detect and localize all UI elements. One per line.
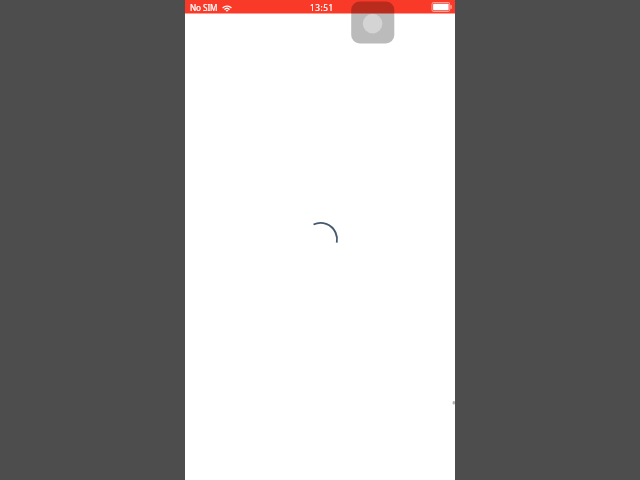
button[interactable]: Assistive touch [346,0,396,46]
staticText: 13:51 [310,2,334,13]
staticText: No SIM [190,2,218,13]
other: Loading [303,222,338,257]
button[interactable]: No SIM [185,0,455,14]
